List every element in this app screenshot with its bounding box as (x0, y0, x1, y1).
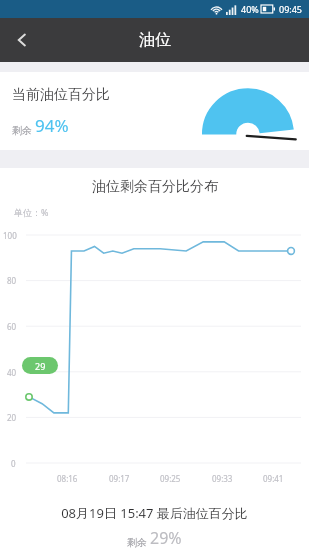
staticText: 29% (150, 527, 182, 549)
staticText: 单位：% (14, 206, 49, 218)
staticText: 09:25 (160, 473, 181, 484)
staticText: 80 (7, 275, 17, 286)
staticText: 40% (241, 3, 259, 15)
staticText: 0 (11, 458, 16, 469)
staticText: 09:33 (212, 473, 233, 484)
staticText: 08月19日 15:47 最后油位百分比 (0, 504, 309, 522)
staticText: 94% (35, 114, 69, 137)
button[interactable]: 当前油位百分比 (0, 72, 309, 150)
staticText: 09:41 (263, 473, 284, 484)
staticText: 09:45 (279, 3, 303, 15)
staticText: 40 (7, 367, 17, 378)
button[interactable]: Back (0, 18, 44, 62)
staticText: 08:16 (57, 473, 78, 484)
staticText: 09:17 (109, 473, 130, 484)
staticText: 当前油位百分比 (12, 86, 110, 104)
staticText: 60 (7, 321, 17, 332)
staticText: 100 (3, 230, 17, 241)
staticText: 油位剩余百分比分布 (92, 178, 218, 196)
staticText: 剩余 (12, 123, 35, 137)
staticText: 油位 (139, 30, 171, 50)
staticText: 剩余 (127, 535, 150, 549)
staticText: 29 (35, 360, 46, 372)
staticText: 20 (7, 412, 17, 423)
button[interactable]: 29 (22, 357, 58, 374)
